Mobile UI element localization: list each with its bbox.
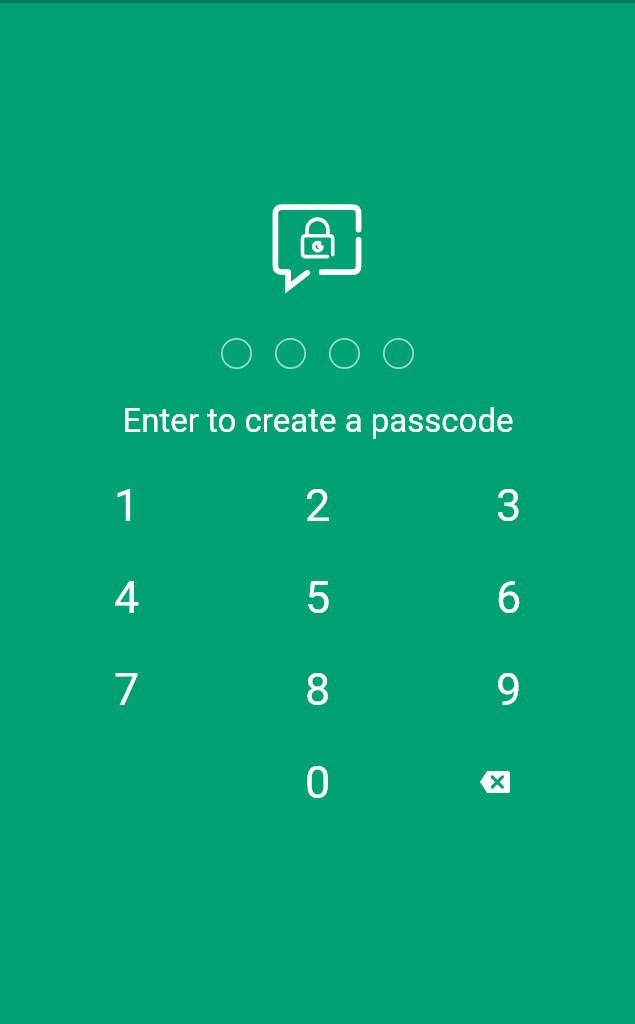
staticText: 6 [496, 571, 522, 624]
staticText: 2 [305, 479, 331, 532]
staticText: 0 [305, 756, 331, 809]
button[interactable]: 5 [222, 551, 413, 643]
staticText: 3 [496, 479, 522, 532]
button[interactable]: 0 [222, 736, 413, 828]
staticText: Enter to create a passcode [122, 401, 514, 440]
staticText: 7 [114, 663, 140, 716]
button[interactable]: 3 [413, 459, 604, 551]
button[interactable]: 8 [222, 643, 413, 736]
staticText: 4 [114, 571, 140, 624]
staticText: 1 [114, 479, 140, 532]
button[interactable]: 6 [413, 551, 604, 643]
button[interactable]: 1 [31, 459, 222, 551]
button[interactable]: 4 [31, 551, 222, 643]
button[interactable]: 9 [413, 643, 604, 736]
staticText: 8 [305, 663, 331, 716]
button[interactable]: 2 [222, 459, 413, 551]
button[interactable]: 7 [31, 643, 222, 736]
staticText: 5 [305, 571, 331, 624]
staticText: 9 [496, 663, 522, 716]
button[interactable]: Delete [413, 736, 604, 828]
